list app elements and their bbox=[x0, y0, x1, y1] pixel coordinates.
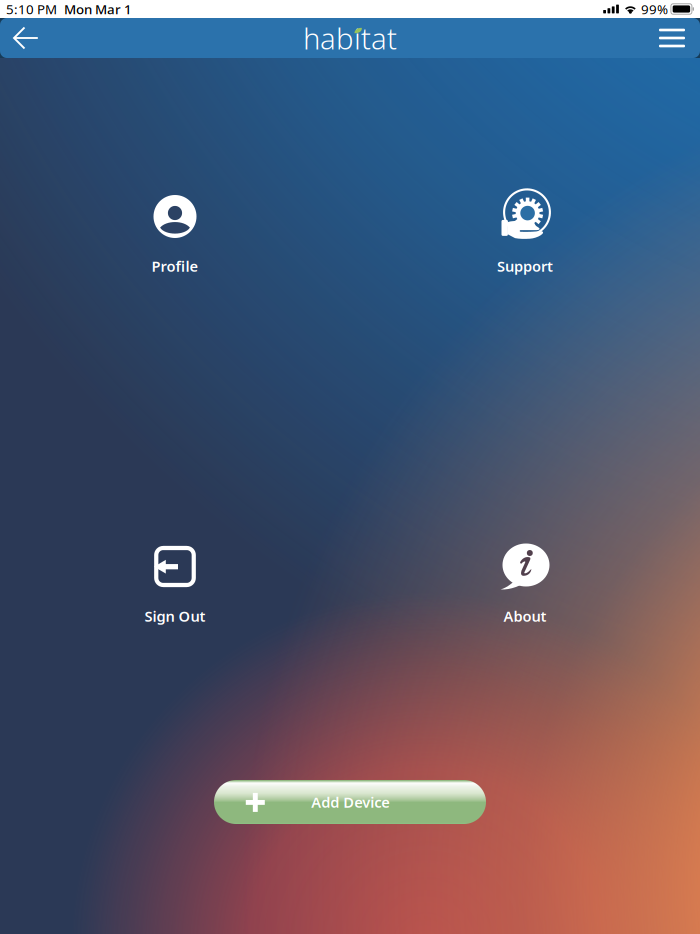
staticText: habitat bbox=[303, 18, 397, 57]
staticText: Sign Out bbox=[144, 606, 205, 626]
staticText: 5:10 PM bbox=[6, 0, 57, 18]
staticText: Profile bbox=[151, 256, 198, 276]
button[interactable]: Menu bbox=[644, 18, 700, 58]
button[interactable]: Profile bbox=[100, 189, 250, 277]
staticText: Mon Mar 1 bbox=[64, 0, 132, 18]
staticText: Support bbox=[497, 256, 553, 276]
button[interactable]: About bbox=[450, 539, 600, 627]
staticText: Add Device bbox=[311, 792, 390, 812]
staticText: About bbox=[503, 606, 546, 626]
button[interactable]: Add Device bbox=[214, 780, 486, 824]
button[interactable]: Support bbox=[450, 189, 600, 277]
button[interactable]: Sign Out bbox=[100, 539, 250, 627]
staticText: 99% bbox=[641, 0, 668, 18]
button[interactable]: Back bbox=[0, 18, 52, 58]
